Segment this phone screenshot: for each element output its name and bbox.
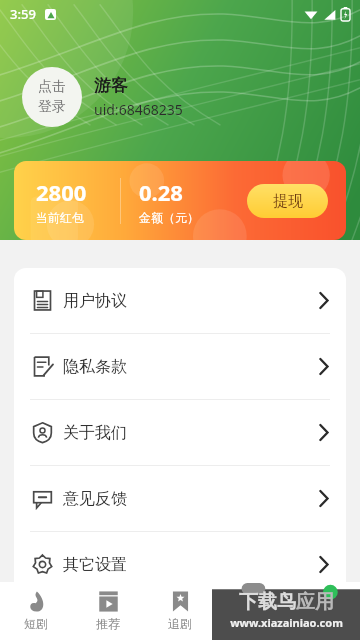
button[interactable]: 提现 xyxy=(247,184,328,218)
staticText: 短剧 xyxy=(24,616,48,631)
button[interactable]: Recommended xyxy=(72,582,144,640)
button[interactable]: 点击 xyxy=(22,67,82,127)
staticText: uid:68468235 xyxy=(94,100,183,119)
button[interactable]: Rewards xyxy=(216,582,288,640)
button[interactable]: Following xyxy=(144,582,216,640)
other: Feedback xyxy=(32,488,53,509)
staticText: 关于我们 xyxy=(63,423,127,443)
staticText: 推荐 xyxy=(96,616,120,631)
other: User agreement xyxy=(32,290,53,311)
button[interactable]: Privacy policy xyxy=(14,334,346,399)
staticText: 当前红包 xyxy=(36,210,84,225)
button[interactable]: Feedback xyxy=(14,466,346,531)
button[interactable]: Short dramas xyxy=(0,582,72,640)
staticText: 福利 xyxy=(240,616,264,631)
other: Rewards xyxy=(242,591,263,612)
staticText: 意见反馈 xyxy=(63,489,127,509)
button[interactable]: Mine xyxy=(288,582,360,640)
button[interactable]: 2800 xyxy=(14,161,346,240)
staticText: 隐私条款 xyxy=(63,357,127,377)
staticText: 点击 xyxy=(38,78,66,96)
staticText: 2800 xyxy=(36,177,87,207)
staticText: 我的 xyxy=(312,616,336,631)
staticText: 3:59 xyxy=(10,5,36,23)
other: Privacy policy xyxy=(32,356,53,377)
staticText: 游客 xyxy=(94,75,128,96)
other: Following xyxy=(170,591,191,612)
staticText: 应用 xyxy=(296,590,334,614)
button[interactable]: Other settings xyxy=(14,532,346,597)
staticText: 金额（元） xyxy=(139,210,199,225)
staticText: 0.28 xyxy=(139,177,183,207)
staticText: 提现 xyxy=(273,192,303,211)
staticText: 用户协议 xyxy=(63,291,127,311)
other: Short dramas xyxy=(26,591,47,612)
other: Recommended xyxy=(98,591,119,612)
staticText: www.xiazainiao.com xyxy=(230,615,343,630)
other: Mine xyxy=(314,591,335,612)
staticText: 登录 xyxy=(38,98,66,116)
button[interactable]: User agreement xyxy=(14,268,346,333)
other: Other settings xyxy=(32,554,53,575)
staticText: 追剧 xyxy=(168,616,192,631)
staticText: 其它设置 xyxy=(63,555,127,575)
staticText: 下载鸟 xyxy=(239,590,296,614)
other: About us xyxy=(32,422,53,443)
button[interactable]: About us xyxy=(14,400,346,465)
